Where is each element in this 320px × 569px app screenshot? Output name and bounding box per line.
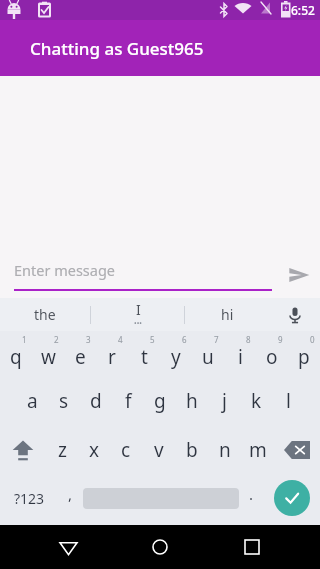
staticText: m — [249, 437, 267, 463]
button[interactable] — [83, 474, 239, 522]
staticText: i — [238, 344, 243, 370]
button[interactable]: 1 — [0, 331, 32, 376]
button[interactable]: v — [142, 426, 175, 474]
button[interactable]: b — [175, 426, 208, 474]
staticText: v — [154, 437, 164, 463]
staticText: the — [34, 305, 56, 324]
staticText: z — [58, 437, 67, 463]
button[interactable]: Shift — [0, 426, 46, 474]
button[interactable]: . — [239, 474, 264, 522]
button[interactable]: ?123 — [0, 474, 58, 522]
staticText: 7 — [214, 334, 219, 345]
staticText: o — [266, 344, 278, 370]
staticText: 6:52 — [291, 2, 315, 18]
staticText: r — [108, 344, 116, 370]
staticText: . — [249, 484, 254, 504]
staticText: 3 — [86, 334, 91, 345]
button[interactable]: I — [91, 298, 184, 331]
button[interactable]: the — [0, 298, 90, 331]
button[interactable]: Back — [44, 525, 92, 569]
button[interactable]: Voice input — [269, 298, 320, 331]
button[interactable]: , — [58, 474, 83, 522]
staticText: u — [202, 344, 214, 370]
button[interactable]: Enter — [264, 474, 320, 522]
button[interactable]: 2 — [32, 331, 64, 376]
staticText: ?123 — [14, 489, 45, 508]
button[interactable]: hi — [185, 298, 269, 331]
staticText: l — [286, 388, 291, 414]
button[interactable]: 6 — [160, 331, 192, 376]
staticText: ••• — [134, 319, 142, 329]
staticText: k — [251, 388, 262, 414]
staticText: 5 — [150, 334, 155, 345]
button[interactable]: h — [176, 376, 208, 426]
button[interactable]: n — [208, 426, 241, 474]
button[interactable]: z — [46, 426, 78, 474]
staticText: h — [186, 388, 198, 414]
button[interactable]: Send — [282, 258, 316, 292]
staticText: 4 — [118, 334, 123, 345]
staticText: p — [298, 344, 310, 370]
button[interactable]: Backspace — [274, 426, 320, 474]
staticText: d — [90, 388, 102, 414]
button[interactable]: f — [112, 376, 144, 426]
button[interactable]: j — [208, 376, 240, 426]
staticText: 0 — [310, 334, 315, 345]
button[interactable]: 8 — [224, 331, 256, 376]
button[interactable]: x — [78, 426, 110, 474]
staticText: c — [121, 437, 131, 463]
button[interactable]: m — [241, 426, 274, 474]
staticText: 2 — [54, 334, 59, 345]
staticText: t — [141, 344, 148, 370]
staticText: j — [222, 388, 227, 414]
staticText: w — [41, 344, 56, 370]
staticText: 8 — [246, 334, 251, 345]
staticText: y — [171, 344, 181, 370]
staticText: 1 — [22, 334, 27, 345]
staticText: b — [186, 437, 198, 463]
button[interactable]: s — [48, 376, 80, 426]
staticText: 6 — [182, 334, 187, 345]
button[interactable]: Home — [136, 525, 184, 569]
button[interactable]: l — [272, 376, 304, 426]
button[interactable]: g — [144, 376, 176, 426]
staticText: , — [68, 484, 73, 504]
button[interactable]: 4 — [96, 331, 128, 376]
staticText: 9 — [278, 334, 283, 345]
button[interactable]: Recents — [228, 525, 276, 569]
staticText: a — [27, 388, 38, 414]
staticText: f — [125, 388, 132, 414]
staticText: x — [89, 437, 100, 463]
button[interactable]: 3 — [64, 331, 96, 376]
staticText: I — [136, 300, 141, 319]
staticText: n — [219, 437, 231, 463]
button[interactable]: a — [16, 376, 48, 426]
staticText: hi — [221, 305, 234, 324]
staticText: g — [154, 388, 166, 414]
button[interactable]: d — [80, 376, 112, 426]
staticText: s — [59, 388, 69, 414]
button[interactable]: 9 — [256, 331, 288, 376]
button[interactable]: Chatting as Guest965 — [0, 20, 320, 76]
button[interactable]: Enter message — [14, 260, 116, 280]
button[interactable]: c — [110, 426, 142, 474]
button[interactable]: 5 — [128, 331, 160, 376]
staticText: e — [75, 344, 86, 370]
button[interactable]: 0 — [288, 331, 320, 376]
button[interactable]: k — [240, 376, 272, 426]
button[interactable]: 7 — [192, 331, 224, 376]
staticText: q — [10, 344, 22, 370]
staticText: Chatting as Guest965 — [30, 37, 204, 60]
